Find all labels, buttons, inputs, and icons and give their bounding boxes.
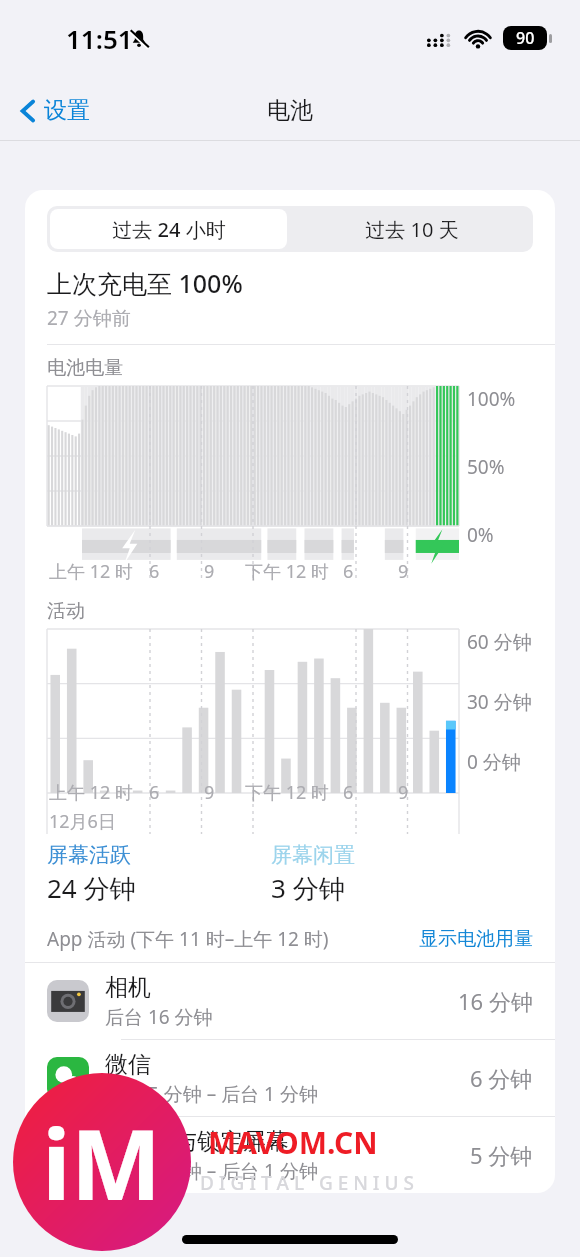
staticText: 100%	[467, 386, 516, 412]
staticText: 0 分钟	[467, 749, 521, 775]
staticText: 90	[516, 27, 535, 49]
staticText: 下午 12 时	[245, 559, 329, 584]
staticText: 过去 24 小时	[112, 216, 226, 243]
staticText: 活动	[47, 599, 85, 623]
button[interactable]: 过去 10 天	[290, 206, 533, 252]
staticText: 相机	[105, 973, 151, 1002]
staticText: 5 分钟	[470, 1140, 533, 1170]
staticText: 电池电量	[47, 356, 123, 380]
staticText: 0%	[467, 522, 494, 548]
button[interactable]: 主屏幕与锁定屏幕	[25, 1117, 555, 1193]
staticText: 6	[149, 559, 160, 584]
staticText: 9	[204, 559, 215, 584]
staticText: iM	[42, 1097, 162, 1228]
staticText: 上午 12 时	[49, 559, 133, 584]
staticText: 9	[398, 559, 409, 584]
button[interactable]: 过去 24 小时	[50, 209, 287, 249]
staticText: 下午 12 时	[245, 780, 329, 805]
staticText: 上午 12 时	[49, 780, 133, 805]
staticText: 30 分钟	[467, 689, 532, 715]
staticText: 16 分钟	[458, 986, 533, 1016]
staticText: 屏幕闲置	[271, 842, 355, 868]
staticText: 27 分钟前	[47, 305, 131, 331]
staticText: 11:51	[66, 21, 133, 56]
staticText: 6	[343, 559, 354, 584]
staticText: 9	[398, 780, 409, 805]
button[interactable]: 微信	[25, 1040, 555, 1116]
staticText: 过去 10 天	[365, 216, 459, 243]
button[interactable]: 显示电池用量	[419, 927, 533, 951]
staticText: 微信	[105, 1050, 151, 1079]
staticText: 9	[204, 780, 215, 805]
staticText: 6	[343, 780, 354, 805]
staticText: D I G I T A L G E N I U S	[200, 1170, 414, 1196]
staticText: 电池	[267, 96, 313, 125]
staticText: 12月6日	[49, 809, 116, 834]
staticText: MAVOM.CN	[208, 1122, 378, 1163]
staticText: 前台 5 分钟 – 后台 1 分钟	[105, 1081, 318, 1107]
staticText: 50%	[467, 454, 505, 480]
staticText: 24 分钟	[47, 870, 136, 906]
staticText: 60 分钟	[467, 629, 532, 655]
staticText: 后台 16 分钟	[105, 1004, 213, 1030]
staticText: 设置	[44, 96, 90, 125]
button[interactable]: 相机	[25, 963, 555, 1039]
button[interactable]: 设置	[14, 92, 96, 129]
staticText: 3 分钟	[271, 870, 345, 906]
staticText: 6 分钟	[470, 1063, 533, 1093]
staticText: 主屏幕与锁定屏幕	[105, 1127, 289, 1156]
staticText: 显示电池用量	[419, 927, 533, 951]
staticText: 6	[149, 780, 160, 805]
staticText: 屏幕活跃	[47, 842, 131, 868]
staticText: 上次充电至 100%	[47, 266, 243, 300]
staticText: App 活动 (下午 11 时–上午 12 时)	[47, 926, 329, 952]
staticText: 前台 4 分钟 – 后台 1 分钟	[105, 1158, 318, 1184]
